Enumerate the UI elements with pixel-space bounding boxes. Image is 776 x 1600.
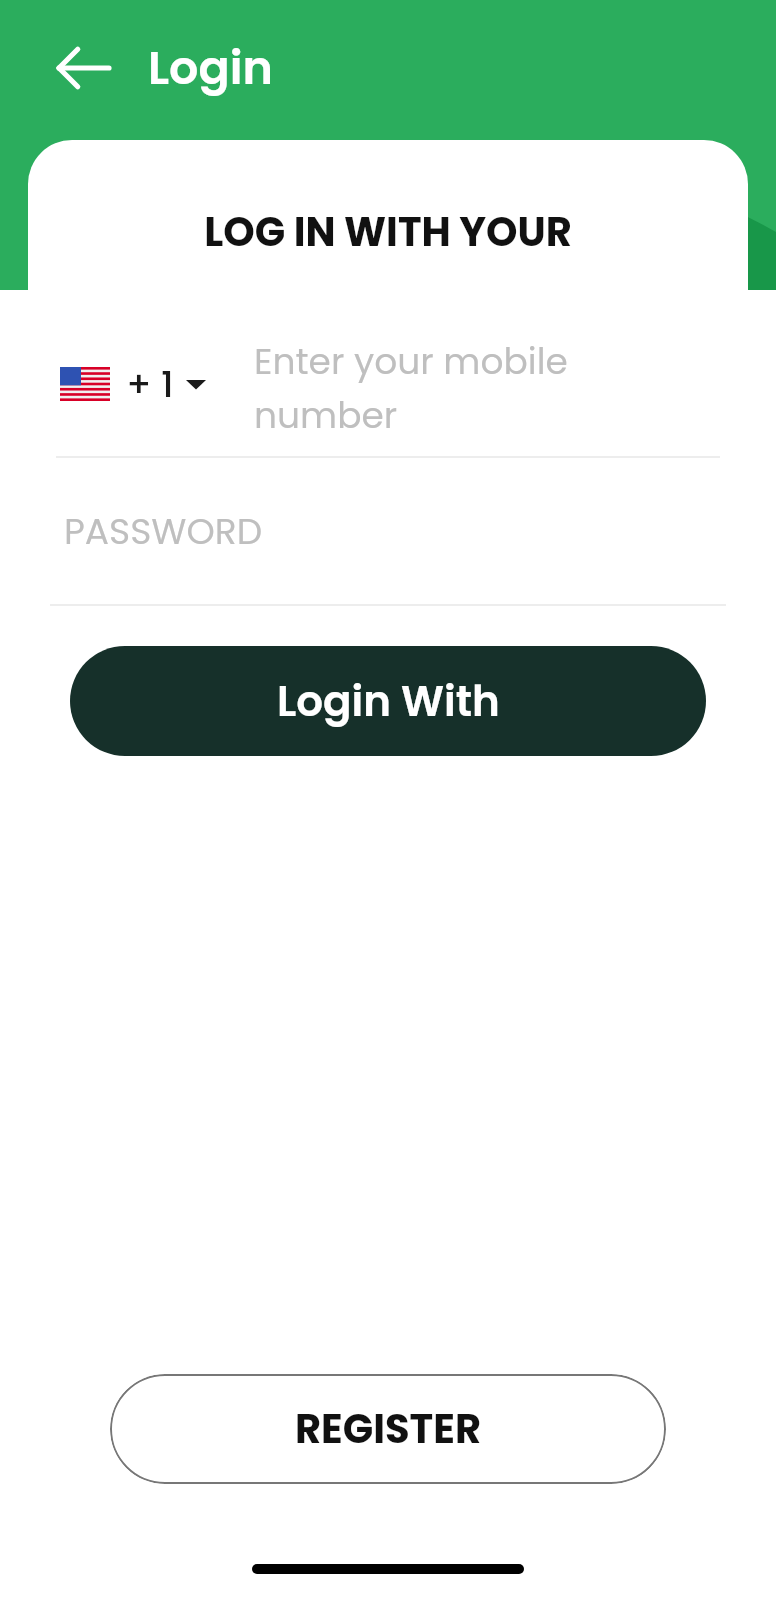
staticText: PASSWORD <box>64 506 263 556</box>
staticText: LOG IN WITH YOUR <box>28 204 748 260</box>
staticText: Login With <box>277 672 500 731</box>
staticText: + 1 <box>126 359 174 409</box>
button[interactable]: Back <box>40 24 128 112</box>
staticText: Login <box>148 36 273 100</box>
button[interactable]: + 1 <box>60 359 218 409</box>
button[interactable]: Login With <box>70 646 706 756</box>
button[interactable]: REGISTER <box>110 1374 666 1484</box>
staticText: REGISTER <box>295 1401 481 1457</box>
staticText: Enter your mobile number <box>254 336 716 432</box>
